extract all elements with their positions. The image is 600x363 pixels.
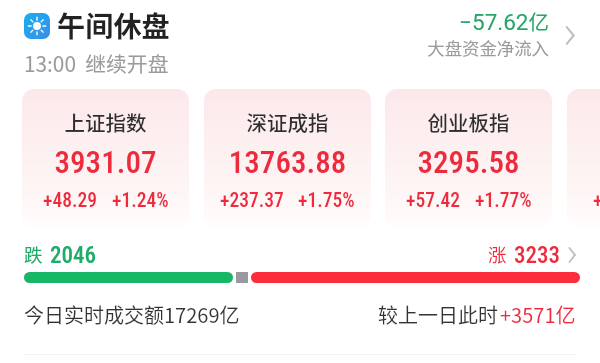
button[interactable]: 创业板指 — [385, 89, 552, 227]
staticText: +1.24% — [112, 189, 169, 212]
staticText: +1.77% — [475, 189, 532, 212]
staticText: 跌 — [24, 241, 43, 268]
button[interactable]: 跌 — [24, 242, 97, 269]
staticText: 2046 — [50, 242, 97, 269]
staticText: 上证指数 — [22, 107, 189, 137]
button[interactable]: −57.62亿 — [389, 0, 549, 62]
staticText: 午间休盘 — [57, 4, 170, 45]
button[interactable]: 深证成指 — [204, 89, 371, 227]
staticText: 较上一日此时 — [378, 300, 498, 329]
staticText: +3571亿 — [500, 300, 576, 329]
staticText: 大盘资金净流入 — [389, 35, 549, 60]
staticText: 创业板指 — [385, 107, 552, 137]
staticText: 3295.58 — [385, 144, 552, 180]
staticText: −57.62亿 — [389, 6, 549, 36]
staticText: 今日实时成交额17269亿 — [24, 300, 240, 329]
staticText: +57.42 — [406, 189, 461, 212]
staticText: 3233 — [514, 242, 561, 269]
staticText: 13:00 继续开盘 — [24, 48, 169, 78]
button[interactable]: 上证指数 — [22, 89, 189, 227]
staticText: 深证成指 — [204, 107, 371, 137]
staticText: +237.37 — [220, 189, 284, 212]
button[interactable]: 涨 — [488, 242, 561, 269]
staticText: +48.29 — [43, 189, 98, 212]
button[interactable]: Open rise and fall detail — [561, 242, 583, 268]
staticText: 13763.88 — [204, 144, 371, 180]
button[interactable]: 科创50 — [567, 89, 600, 227]
button[interactable]: Market status — [24, 4, 170, 45]
staticText: +1.75% — [298, 189, 355, 212]
staticText: 涨 — [488, 241, 507, 268]
staticText: +8.60 — [593, 189, 600, 212]
staticText: 3931.07 — [22, 144, 189, 180]
button[interactable]: Open capital flow detail — [560, 24, 586, 46]
